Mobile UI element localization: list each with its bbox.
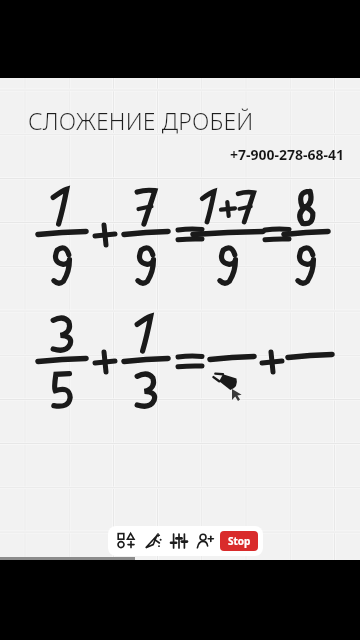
button[interactable]: Settings [166, 528, 192, 554]
staticText: +7-900-278-68-41 [0, 145, 344, 164]
staticText: Stop [228, 534, 251, 548]
button[interactable]: Effects [140, 528, 166, 554]
staticText: СЛОЖЕНИЕ ДРОБЕЙ [28, 105, 254, 136]
button[interactable]: Insert shape [114, 528, 140, 554]
button[interactable]: Add participant [192, 528, 218, 554]
button[interactable]: Stop [220, 531, 258, 551]
